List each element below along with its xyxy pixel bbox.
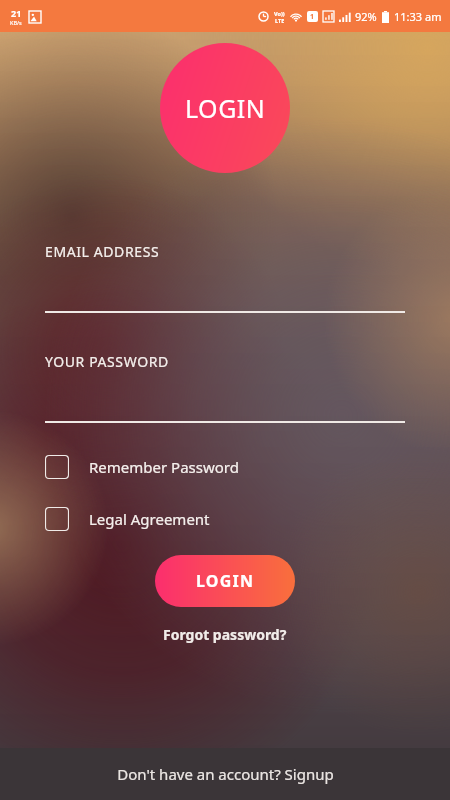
staticText: 92% [355,9,377,24]
staticText: Forgot password? [163,625,287,644]
button[interactable]: Forgot password? [157,619,293,650]
button[interactable]: Legal Agreement [45,501,405,537]
button[interactable]: Remember Password [45,449,405,485]
button[interactable]: Don't have an account? Signup [0,748,450,800]
staticText: EMAIL ADDRESS [45,242,160,261]
staticText: 11:33 am [394,9,442,24]
staticText: LOGIN [185,91,266,125]
staticText: LOGIN [196,570,255,592]
staticText: Remember Password [89,457,239,477]
staticText: YOUR PASSWORD [45,352,169,371]
staticText: Legal Agreement [89,509,210,529]
staticText: Vo)) [274,10,285,17]
staticText: 21 [11,7,22,19]
staticText: 1 [310,12,315,22]
button[interactable]: LOGIN [155,555,295,607]
staticText: KB/s [10,19,22,26]
staticText: Don't have an account? Signup [117,764,334,784]
staticText: LTE [275,17,285,24]
button[interactable]: LOGIN [160,43,290,173]
